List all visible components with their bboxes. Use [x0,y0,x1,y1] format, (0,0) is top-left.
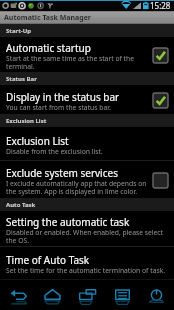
button[interactable]: Exclude system services [0,161,174,198]
button[interactable]: Enabled [152,47,168,63]
staticText: Setting the automatic task [6,215,130,229]
staticText: Automatic Task Manager [4,13,92,23]
staticText: Start-Up [6,27,32,35]
staticText: Start at the same time as the start of t… [6,54,148,71]
staticText: Auto Task [6,201,36,209]
staticText: Display in the status bar [6,90,120,104]
staticText: Disable from the exclusion list. [6,147,103,156]
staticText: Status Bar [6,75,37,83]
staticText: Exclusion List [6,134,69,148]
button[interactable]: Display in the status bar [0,85,174,114]
button[interactable]: Exclusion List [0,127,174,160]
button[interactable]: Recent apps [70,279,104,310]
button[interactable]: Setting the automatic task [0,211,174,246]
button[interactable]: Power [139,279,173,310]
button[interactable]: Disabled [152,172,168,188]
staticText: Time of Auto Task [6,253,90,267]
button[interactable]: Time of Auto Task [0,247,174,278]
staticText: Automatic startup [6,41,91,55]
staticText: I exclude automatically app that depends… [6,179,148,196]
staticText: Disabled or enabled. When enabled, pleas… [6,228,167,245]
button[interactable]: Menu [105,279,139,310]
button[interactable]: Automatic startup [0,37,174,72]
staticText: Exclusion List [6,117,47,125]
button[interactable]: Back [1,279,35,310]
staticText: You can start from the status bar. [6,103,111,112]
staticText: 15:28 [150,0,171,11]
button[interactable]: Enabled [152,92,168,108]
staticText: Set the time for the automatic terminati… [6,266,166,275]
staticText: Exclude system services [6,166,118,180]
button[interactable]: Home [35,279,69,310]
